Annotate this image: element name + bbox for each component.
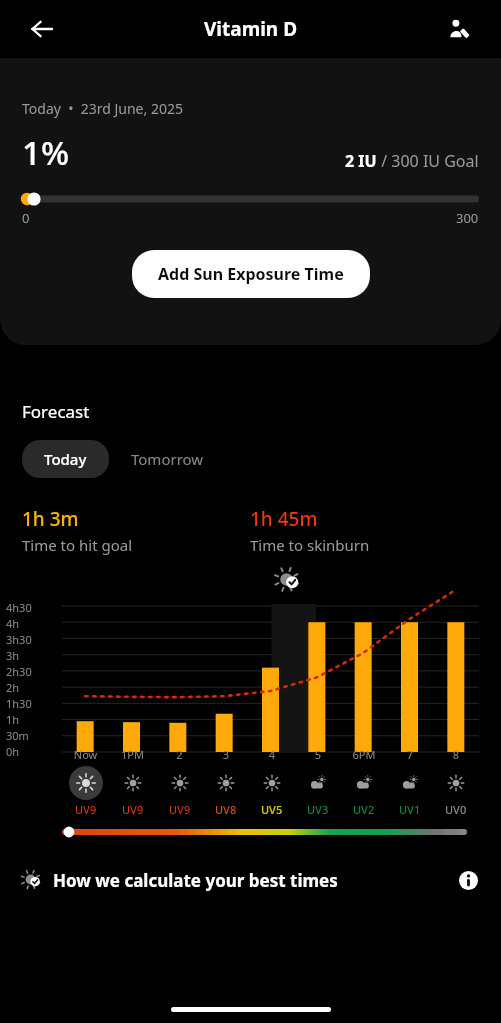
staticText: UV2: [353, 802, 375, 817]
staticText: UV9: [122, 802, 144, 817]
staticText: 2: [156, 747, 203, 762]
staticText: 4h30: [6, 600, 32, 615]
staticText: UV3: [307, 802, 329, 817]
staticText: 2h: [6, 680, 20, 695]
staticText: / 300 IU Goal: [377, 150, 479, 172]
staticText: UV8: [215, 802, 237, 817]
staticText: How we calculate your best times: [53, 869, 338, 892]
button[interactable]: How we calculate your best times: [0, 863, 501, 897]
button[interactable]: UV9: [62, 766, 109, 817]
staticText: 0: [22, 209, 30, 227]
other: Info: [455, 867, 481, 893]
button[interactable]: Add Sun Exposure Time: [132, 250, 370, 298]
staticText: 300: [456, 209, 479, 227]
button[interactable]: UV8: [203, 766, 249, 817]
staticText: 1h 45m: [250, 506, 318, 532]
staticText: 1h 3m: [22, 506, 79, 532]
staticText: Forecast: [22, 400, 90, 423]
button[interactable]: Back: [20, 7, 64, 51]
staticText: Vitamin D: [204, 16, 298, 42]
staticText: 0h: [6, 744, 20, 759]
staticText: 7: [387, 747, 433, 762]
staticText: UV0: [445, 802, 467, 817]
staticText: Add Sun Exposure Time: [158, 263, 344, 285]
staticText: 3h: [6, 648, 20, 663]
staticText: 4: [249, 747, 295, 762]
staticText: 1PM: [109, 747, 156, 762]
staticText: 2 IU: [345, 150, 377, 172]
staticText: 1h30: [6, 696, 32, 711]
button[interactable]: UV5: [249, 766, 295, 817]
staticText: 3h30: [6, 632, 32, 647]
staticText: UV9: [169, 802, 191, 817]
staticText: UV5: [261, 802, 283, 817]
button[interactable]: UV3: [295, 766, 341, 817]
staticText: Now: [62, 747, 109, 762]
button[interactable]: Today: [22, 440, 109, 478]
staticText: 4h: [6, 616, 20, 631]
staticText: 6PM: [341, 747, 387, 762]
staticText: Tomorrow: [131, 449, 204, 469]
button[interactable]: UV1: [387, 766, 433, 817]
staticText: 8: [433, 747, 479, 762]
button[interactable]: UV2: [341, 766, 387, 817]
button[interactable]: Edit profile: [437, 7, 481, 51]
staticText: 5: [295, 747, 341, 762]
button[interactable]: UV0: [433, 766, 479, 817]
staticText: UV9: [75, 802, 97, 817]
staticText: 1%: [22, 130, 69, 175]
staticText: UV1: [399, 802, 421, 817]
staticText: Today • 23rd June, 2025: [22, 99, 183, 118]
button[interactable]: UV9: [109, 766, 156, 817]
button[interactable]: UV9: [156, 766, 203, 817]
staticText: 30m: [6, 728, 29, 743]
staticText: 3: [203, 747, 249, 762]
staticText: Time to skinburn: [250, 535, 370, 555]
button[interactable]: Tomorrow: [109, 440, 226, 478]
staticText: Today: [44, 449, 87, 469]
staticText: Time to hit goal: [22, 535, 133, 555]
staticText: 1h: [6, 712, 20, 727]
staticText: 2h30: [6, 664, 32, 679]
